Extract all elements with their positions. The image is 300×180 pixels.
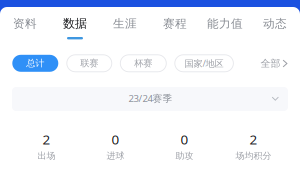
button[interactable]: 23/24赛季 — [12, 87, 288, 111]
staticText: 数据 — [63, 16, 87, 31]
staticText: 0 — [111, 130, 119, 148]
button[interactable]: 杯赛 — [120, 55, 166, 72]
staticText: 全部 — [260, 57, 280, 70]
staticText: 进球 — [106, 150, 124, 161]
button[interactable]: 联赛 — [67, 55, 112, 72]
staticText: 生涯 — [113, 16, 137, 31]
staticText: 2 — [249, 130, 257, 148]
button[interactable]: 全部 — [260, 55, 287, 72]
button[interactable]: 能力值 — [200, 7, 250, 41]
staticText: 赛程 — [163, 16, 187, 31]
staticText: 出场 — [37, 150, 55, 161]
button[interactable]: 动态 — [250, 7, 300, 41]
staticText: 助攻 — [175, 150, 193, 161]
staticText: 资料 — [13, 16, 37, 31]
button[interactable]: 总计 — [12, 55, 58, 72]
button[interactable]: 赛程 — [150, 7, 200, 41]
staticText: 2 — [42, 130, 50, 148]
button[interactable]: 数据 — [50, 7, 100, 41]
staticText: 总计 — [26, 57, 44, 69]
button[interactable]: 资料 — [0, 7, 50, 41]
staticText: 国家/地区 — [185, 57, 224, 69]
staticText: 能力值 — [207, 16, 243, 31]
button[interactable]: 国家/地区 — [175, 55, 233, 72]
staticText: 场均积分 — [235, 150, 271, 161]
staticText: 23/24赛季 — [128, 92, 172, 105]
staticText: 联赛 — [80, 57, 98, 69]
staticText: 0 — [180, 130, 188, 148]
staticText: 动态 — [263, 16, 287, 31]
staticText: 杯赛 — [134, 57, 152, 69]
button[interactable]: 生涯 — [100, 7, 150, 41]
